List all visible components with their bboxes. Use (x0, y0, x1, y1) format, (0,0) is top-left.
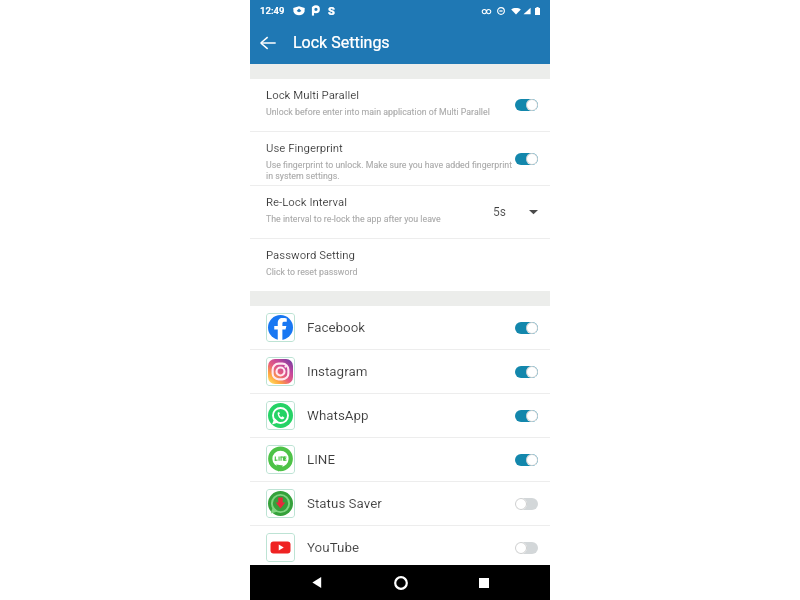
button[interactable]: Home (383, 565, 418, 600)
button[interactable]: Back (253, 28, 283, 58)
button[interactable]: Switch on (515, 366, 538, 378)
button[interactable]: Use Fingerprint (250, 132, 550, 185)
staticText: LINE (307, 452, 515, 468)
button[interactable]: Status Saver (250, 482, 550, 525)
staticText: Use Fingerprint (266, 141, 343, 154)
staticText: Click to reset password (266, 267, 358, 277)
staticText: Instagram (307, 364, 515, 380)
button[interactable]: LINE (250, 438, 550, 481)
button[interactable]: Re-lock interval 5s (493, 201, 538, 223)
staticText: YouTube (307, 540, 515, 556)
button[interactable]: YouTube (250, 526, 550, 569)
staticText: Lock Settings (293, 33, 390, 52)
button[interactable]: Switch on (515, 99, 538, 111)
staticText: Facebook (307, 320, 515, 336)
staticText: Status Saver (307, 496, 515, 512)
button[interactable]: Switch off (515, 542, 538, 554)
button[interactable]: Lock Multi Parallel (250, 79, 550, 131)
staticText: Use fingerprint to unlock. Make sure you… (266, 160, 513, 181)
button[interactable]: Switch off (515, 498, 538, 510)
staticText: Lock Multi Parallel (266, 88, 360, 101)
button[interactable]: Password Setting (250, 239, 550, 291)
staticText: Password Setting (266, 248, 355, 261)
staticText: Unlock before enter into main applicatio… (266, 107, 490, 117)
button[interactable]: Switch on (515, 322, 538, 334)
staticText: Messenger (307, 577, 515, 593)
staticText: 5s (493, 205, 506, 219)
staticText: Re-Lock Interval (266, 195, 347, 208)
button[interactable]: Recents (466, 565, 501, 600)
button[interactable]: Back (299, 565, 334, 600)
button[interactable]: Switch on (515, 410, 538, 422)
staticText: WhatsApp (307, 408, 515, 424)
staticText: S (328, 5, 335, 16)
button[interactable]: WhatsApp (250, 394, 550, 437)
staticText: The interval to re-lock the app after yo… (266, 214, 441, 224)
button[interactable]: Re-Lock Interval (250, 186, 550, 238)
button[interactable]: Switch on (515, 153, 538, 165)
staticText: 12:49 (260, 5, 285, 16)
button[interactable]: Switch on (515, 454, 538, 466)
button[interactable]: Facebook (250, 306, 550, 349)
button[interactable]: Messenger (250, 570, 550, 600)
button[interactable]: Instagram (250, 350, 550, 393)
